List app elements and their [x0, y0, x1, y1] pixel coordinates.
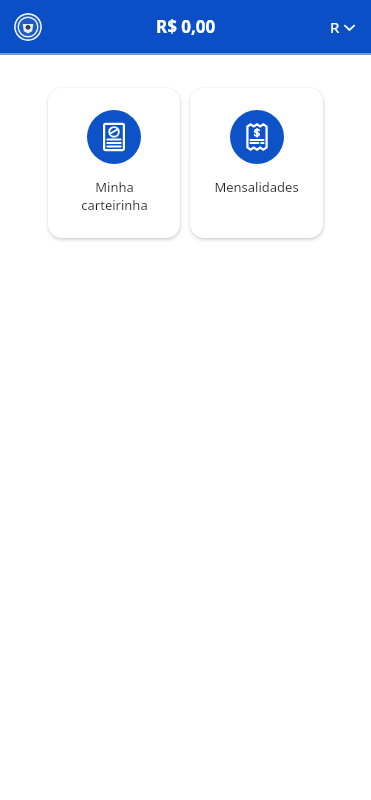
staticText: R [330, 17, 340, 37]
button[interactable]: Minha carteirinha [48, 88, 180, 238]
staticText: Mensalidades [214, 178, 299, 196]
button[interactable]: Menu [14, 13, 42, 41]
staticText: Minha carteirinha [81, 178, 148, 214]
button[interactable]: Mensalidades [190, 88, 323, 238]
button[interactable]: R [326, 13, 359, 41]
staticText: R$ 0,00 [156, 15, 216, 38]
